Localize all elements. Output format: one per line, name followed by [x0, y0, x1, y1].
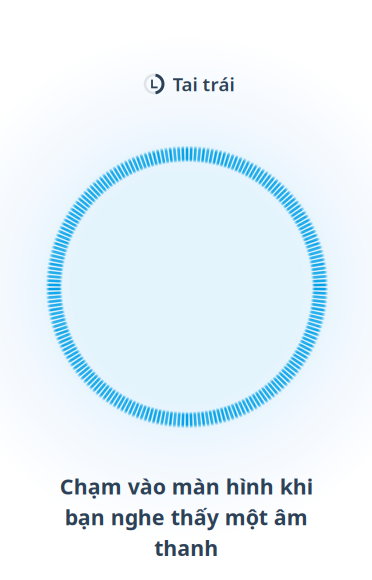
staticText: Tai trái	[172, 72, 234, 96]
button[interactable]: Chạm vào màn hình khi bạn nghe thấy một …	[0, 0, 372, 580]
staticText: Chạm vào màn hình khi bạn nghe thấy một …	[59, 472, 312, 562]
